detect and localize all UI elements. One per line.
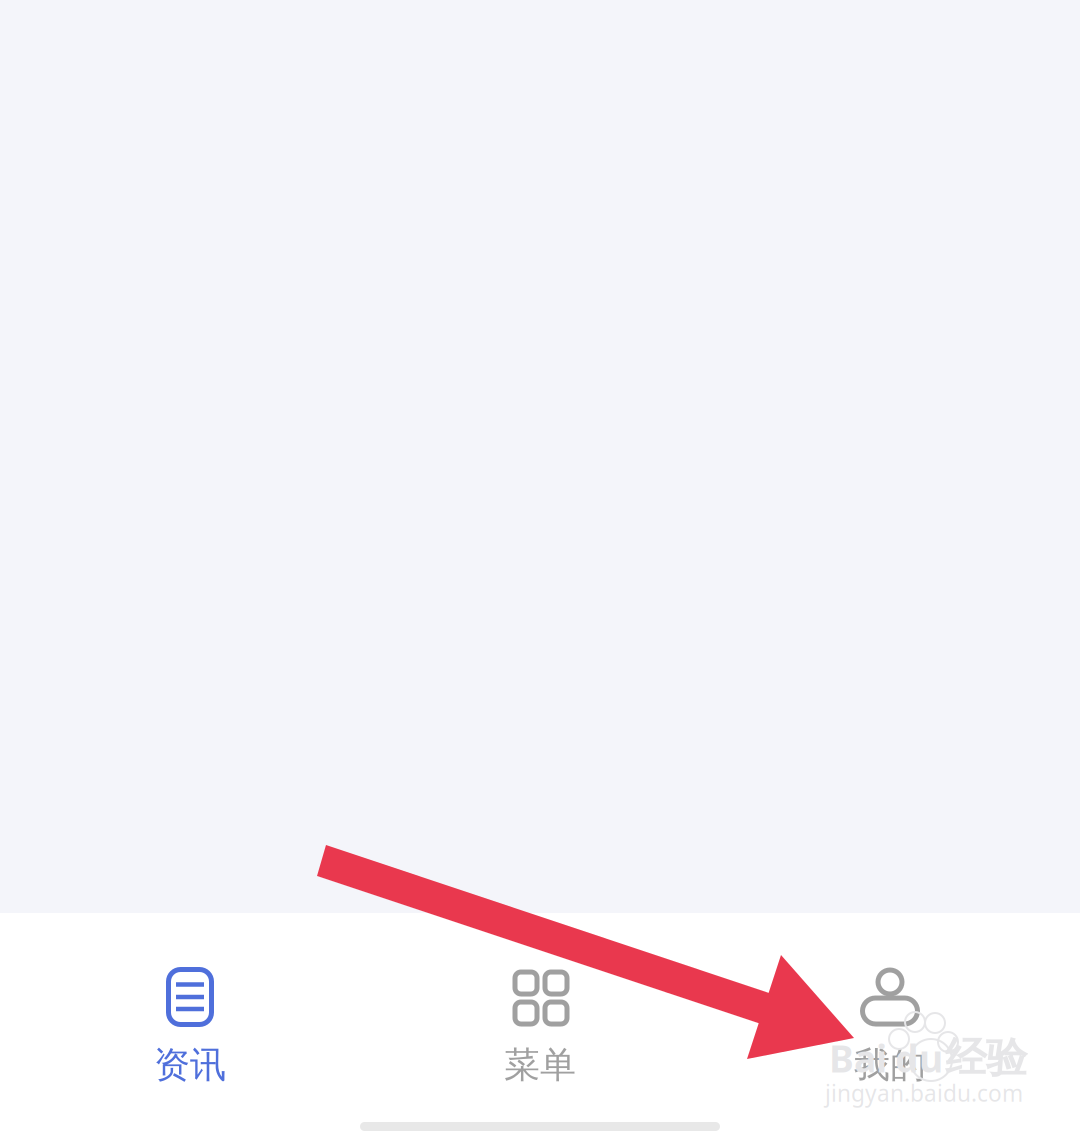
button[interactable]: 资讯	[15, 913, 365, 1119]
staticText: 菜单	[504, 1043, 576, 1087]
staticText: jingyan.baidu.com	[825, 1078, 1023, 1108]
staticText: du	[895, 1033, 943, 1083]
button[interactable]: 我的	[715, 913, 1065, 1119]
button[interactable]: 菜单	[365, 913, 715, 1119]
staticText: 经验	[945, 1033, 1027, 1083]
staticText: Bai	[829, 1033, 887, 1083]
staticText: 我的	[854, 1043, 926, 1087]
staticText: 资讯	[154, 1043, 226, 1087]
